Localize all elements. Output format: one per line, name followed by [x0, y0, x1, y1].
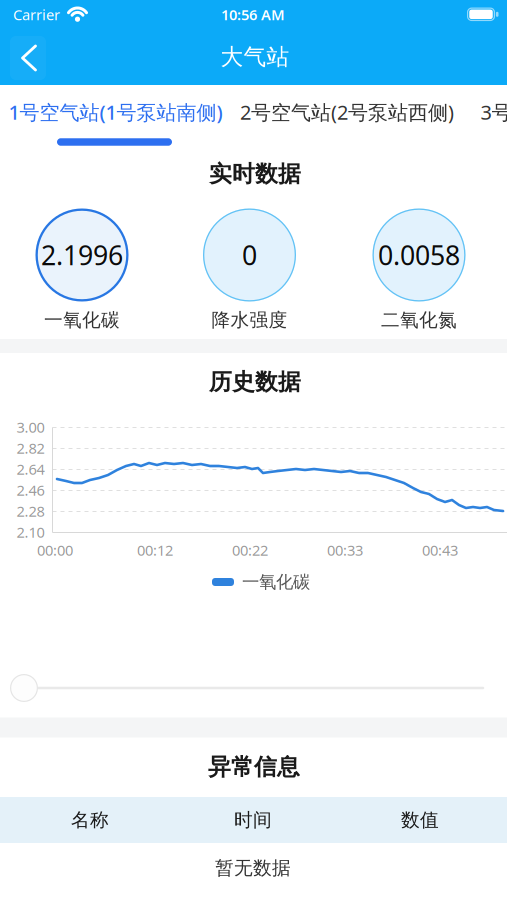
staticText: 一氧化碳 [44, 308, 120, 331]
staticText: 3.00 [16, 417, 44, 437]
button[interactable]: Back [6, 31, 50, 85]
staticText: 0 [242, 237, 257, 273]
staticText: 00:33 [327, 540, 363, 560]
staticText: 时间 [234, 808, 272, 831]
staticText: 0.0058 [378, 237, 460, 273]
button[interactable]: 1号空气站(1号泵站南侧) [1, 90, 229, 134]
button[interactable]: 3号空气站 [478, 90, 507, 134]
staticText: 10:56 AM [221, 5, 285, 24]
staticText: 一氧化碳 [242, 571, 310, 593]
staticText: 名称 [71, 808, 109, 831]
staticText: 00:22 [232, 540, 268, 560]
staticText: 降水强度 [211, 308, 287, 331]
staticText: 2.28 [16, 501, 44, 521]
staticText: 1号空气站(1号泵站南侧) [8, 99, 222, 125]
button[interactable]: 一氧化碳 [212, 571, 310, 593]
staticText: 暂无数据 [215, 856, 291, 879]
staticText: 实时数据 [209, 160, 301, 188]
staticText: 2号空气站(2号泵站西侧) [240, 99, 454, 125]
button[interactable]: 2号空气站(2号泵站西侧) [235, 90, 459, 134]
staticText: 00:43 [422, 540, 458, 560]
staticText: 2.64 [16, 459, 44, 479]
staticText: 二氧化氮 [381, 308, 457, 331]
staticText: 异常信息 [208, 753, 300, 781]
staticText: 2.1996 [41, 237, 123, 273]
staticText: 2.46 [16, 480, 44, 500]
staticText: 历史数据 [209, 368, 301, 396]
staticText: 00:00 [37, 540, 73, 560]
staticText: 数值 [401, 808, 439, 831]
staticText: 00:12 [137, 540, 173, 560]
staticText: 大气站 [220, 43, 289, 71]
staticText: 2.10 [16, 522, 44, 542]
staticText: Carrier [13, 5, 60, 24]
staticText: 3号空气站 [480, 99, 507, 125]
button[interactable]: 时间范围滑块 [10, 674, 38, 702]
staticText: 2.82 [16, 438, 44, 458]
